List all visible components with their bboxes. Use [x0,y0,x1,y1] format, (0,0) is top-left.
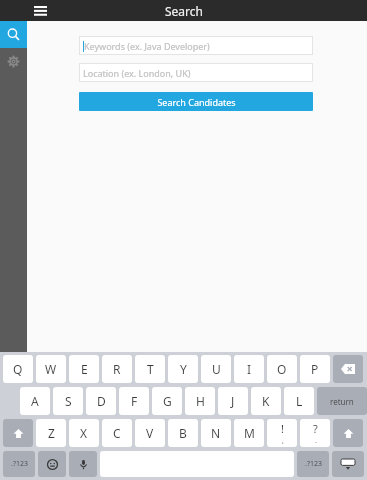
staticText: V [146,425,154,441]
staticText: Q [13,361,23,377]
staticText: Location (ex. London, UK) [83,67,191,79]
staticText: G [163,393,172,409]
button[interactable]: Emoji [38,451,66,477]
button[interactable]: M [234,419,264,447]
staticText: Keywords (ex. Java Developer) [84,40,210,52]
button[interactable]: V [135,419,165,447]
button[interactable]: F [119,387,149,415]
staticText: ! [281,421,284,436]
button[interactable]: I [234,355,264,383]
staticText: ? [313,421,318,436]
button[interactable]: C [102,419,132,447]
button[interactable]: Dictation [69,451,97,477]
other: Shift [13,428,24,439]
staticText: D [97,393,106,409]
button[interactable]: D [86,387,116,415]
button[interactable]: E [69,355,99,383]
staticText: M [244,425,255,441]
button[interactable]: W [36,355,66,383]
staticText: T [147,361,154,377]
button[interactable]: .?123 [3,451,35,477]
button[interactable]: Menu [27,0,53,21]
button[interactable]: Z [36,419,66,447]
staticText: S [65,393,72,409]
button[interactable]: Search [0,21,27,48]
button[interactable]: B [168,419,198,447]
button[interactable]: Y [168,355,198,383]
staticText: .?123 [305,459,322,469]
button[interactable]: Location (ex. London, UK) [79,63,313,82]
staticText: X [80,425,88,441]
staticText: I [247,361,252,377]
button[interactable]: U [201,355,231,383]
button[interactable]: K [251,387,281,415]
button[interactable]: ! [267,419,297,447]
button[interactable]: Settings [0,48,27,75]
staticText: return [330,396,354,407]
button[interactable]: N [201,419,231,447]
staticText: J [231,393,235,409]
button[interactable]: O [267,355,297,383]
button[interactable]: Shift [3,419,33,447]
staticText: W [45,361,57,377]
button[interactable]: X [69,419,99,447]
staticText: B [179,425,187,441]
staticText: Search [165,3,203,19]
staticText: Search Candidates [157,96,236,108]
button[interactable]: L [284,387,314,415]
button[interactable]: P [300,355,330,383]
button[interactable]: return [317,387,367,415]
button[interactable]: A [20,387,50,415]
staticText: U [212,361,221,377]
staticText: O [277,361,287,377]
staticText: Z [48,425,55,441]
staticText: . [315,436,317,446]
other: Emoji [47,459,58,470]
staticText: A [31,393,39,409]
button[interactable]: G [152,387,182,415]
staticText: F [131,393,138,409]
button[interactable]: .?123 [297,451,329,477]
other: Shift [343,428,354,439]
staticText: R [113,361,121,377]
staticText: N [211,425,221,441]
staticText: E [81,361,88,377]
button[interactable]: Search Candidates [79,92,313,111]
other: Dictation [78,459,89,470]
button[interactable]: Shift [333,419,363,447]
staticText: P [311,361,319,377]
button[interactable]: R [102,355,132,383]
button[interactable]: J [218,387,248,415]
other: Delete [341,364,355,374]
button[interactable]: S [53,387,83,415]
staticText: , [282,436,284,446]
staticText: K [262,393,270,409]
staticText: H [196,393,205,409]
button[interactable]: T [135,355,165,383]
staticText: Y [180,361,187,377]
other: Hide keyboard [341,459,355,470]
button[interactable]: Keywords (ex. Java Developer) [79,36,313,55]
staticText: .?123 [11,459,28,469]
button[interactable]: H [185,387,215,415]
staticText: L [296,393,303,409]
staticText: C [113,425,121,441]
button[interactable]: Q [3,355,33,383]
button[interactable]: Delete [333,355,363,383]
button[interactable]: ? [300,419,330,447]
button[interactable]: Hide keyboard [332,451,364,477]
